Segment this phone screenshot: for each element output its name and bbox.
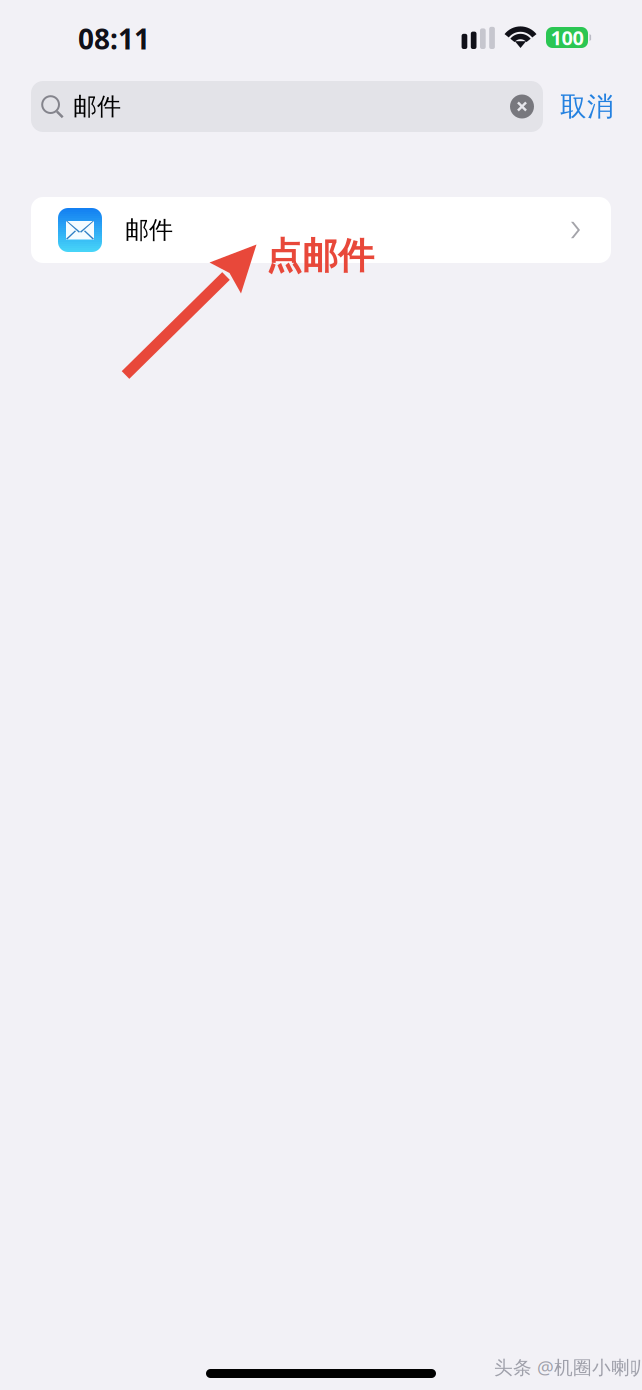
button[interactable]: 清除搜索文本	[510, 94, 534, 118]
staticText: 邮件	[125, 215, 173, 245]
staticText: 100	[550, 24, 583, 51]
staticText: 点邮件	[266, 234, 374, 278]
staticText: 08:11	[78, 20, 150, 57]
staticText: 取消	[560, 90, 614, 123]
staticText: 头条 @机圈小喇叭	[494, 1355, 642, 1379]
staticText: 邮件	[73, 92, 121, 121]
button[interactable]: 邮件	[31, 197, 611, 263]
button[interactable]: 取消	[543, 81, 631, 132]
